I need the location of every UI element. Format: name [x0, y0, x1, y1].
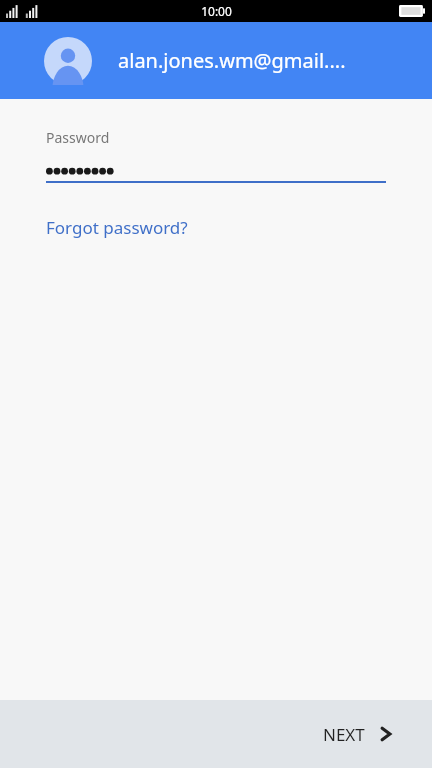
staticText: NEXT	[323, 723, 365, 746]
staticText: Forgot password?	[46, 216, 188, 239]
button[interactable]: NEXT	[295, 700, 432, 768]
staticText: alan.jones.wm@gmail....	[118, 47, 346, 74]
other: Account	[44, 37, 92, 85]
staticText: Password	[46, 128, 110, 147]
button[interactable]: Password	[0, 128, 432, 183]
button[interactable]: Account	[0, 22, 432, 99]
button[interactable]: Forgot password?	[46, 214, 188, 241]
staticText: 10:00	[201, 3, 232, 19]
